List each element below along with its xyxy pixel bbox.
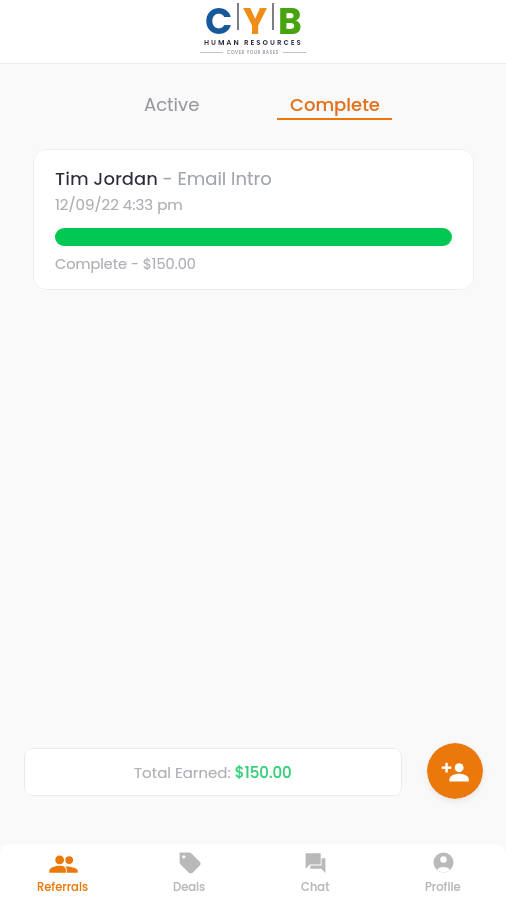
staticText: COVER YOUR BASES [227,49,279,55]
staticText: Complete - $150.00 [55,254,196,274]
staticText: C [205,0,233,36]
button[interactable]: Chat [252,844,379,900]
button[interactable]: Deals [126,844,252,900]
button[interactable]: Add referral [427,743,483,799]
staticText: Total Earned: $150.00 [134,762,292,783]
staticText: Complete [290,92,380,117]
staticText: Chat [301,879,330,895]
staticText: HUMAN RESOURCES [204,38,303,48]
button[interactable]: Referrals [0,844,126,900]
button[interactable]: Total Earned: $150.00 [24,748,402,796]
staticText: Profile [425,879,461,895]
staticText: Referrals [37,879,89,895]
staticText: Active [144,92,200,117]
button[interactable]: Tim Jordan - Email Intro [33,149,474,290]
staticText: 12/09/22 4:33 pm [55,194,183,215]
staticText: Deals [173,879,206,895]
staticText: B [278,0,302,36]
staticText: Y [243,0,268,36]
button[interactable]: Profile [379,844,506,900]
button[interactable]: Active [90,92,253,120]
button[interactable]: Complete [253,92,416,120]
staticText: Tim Jordan - Email Intro [55,166,272,191]
